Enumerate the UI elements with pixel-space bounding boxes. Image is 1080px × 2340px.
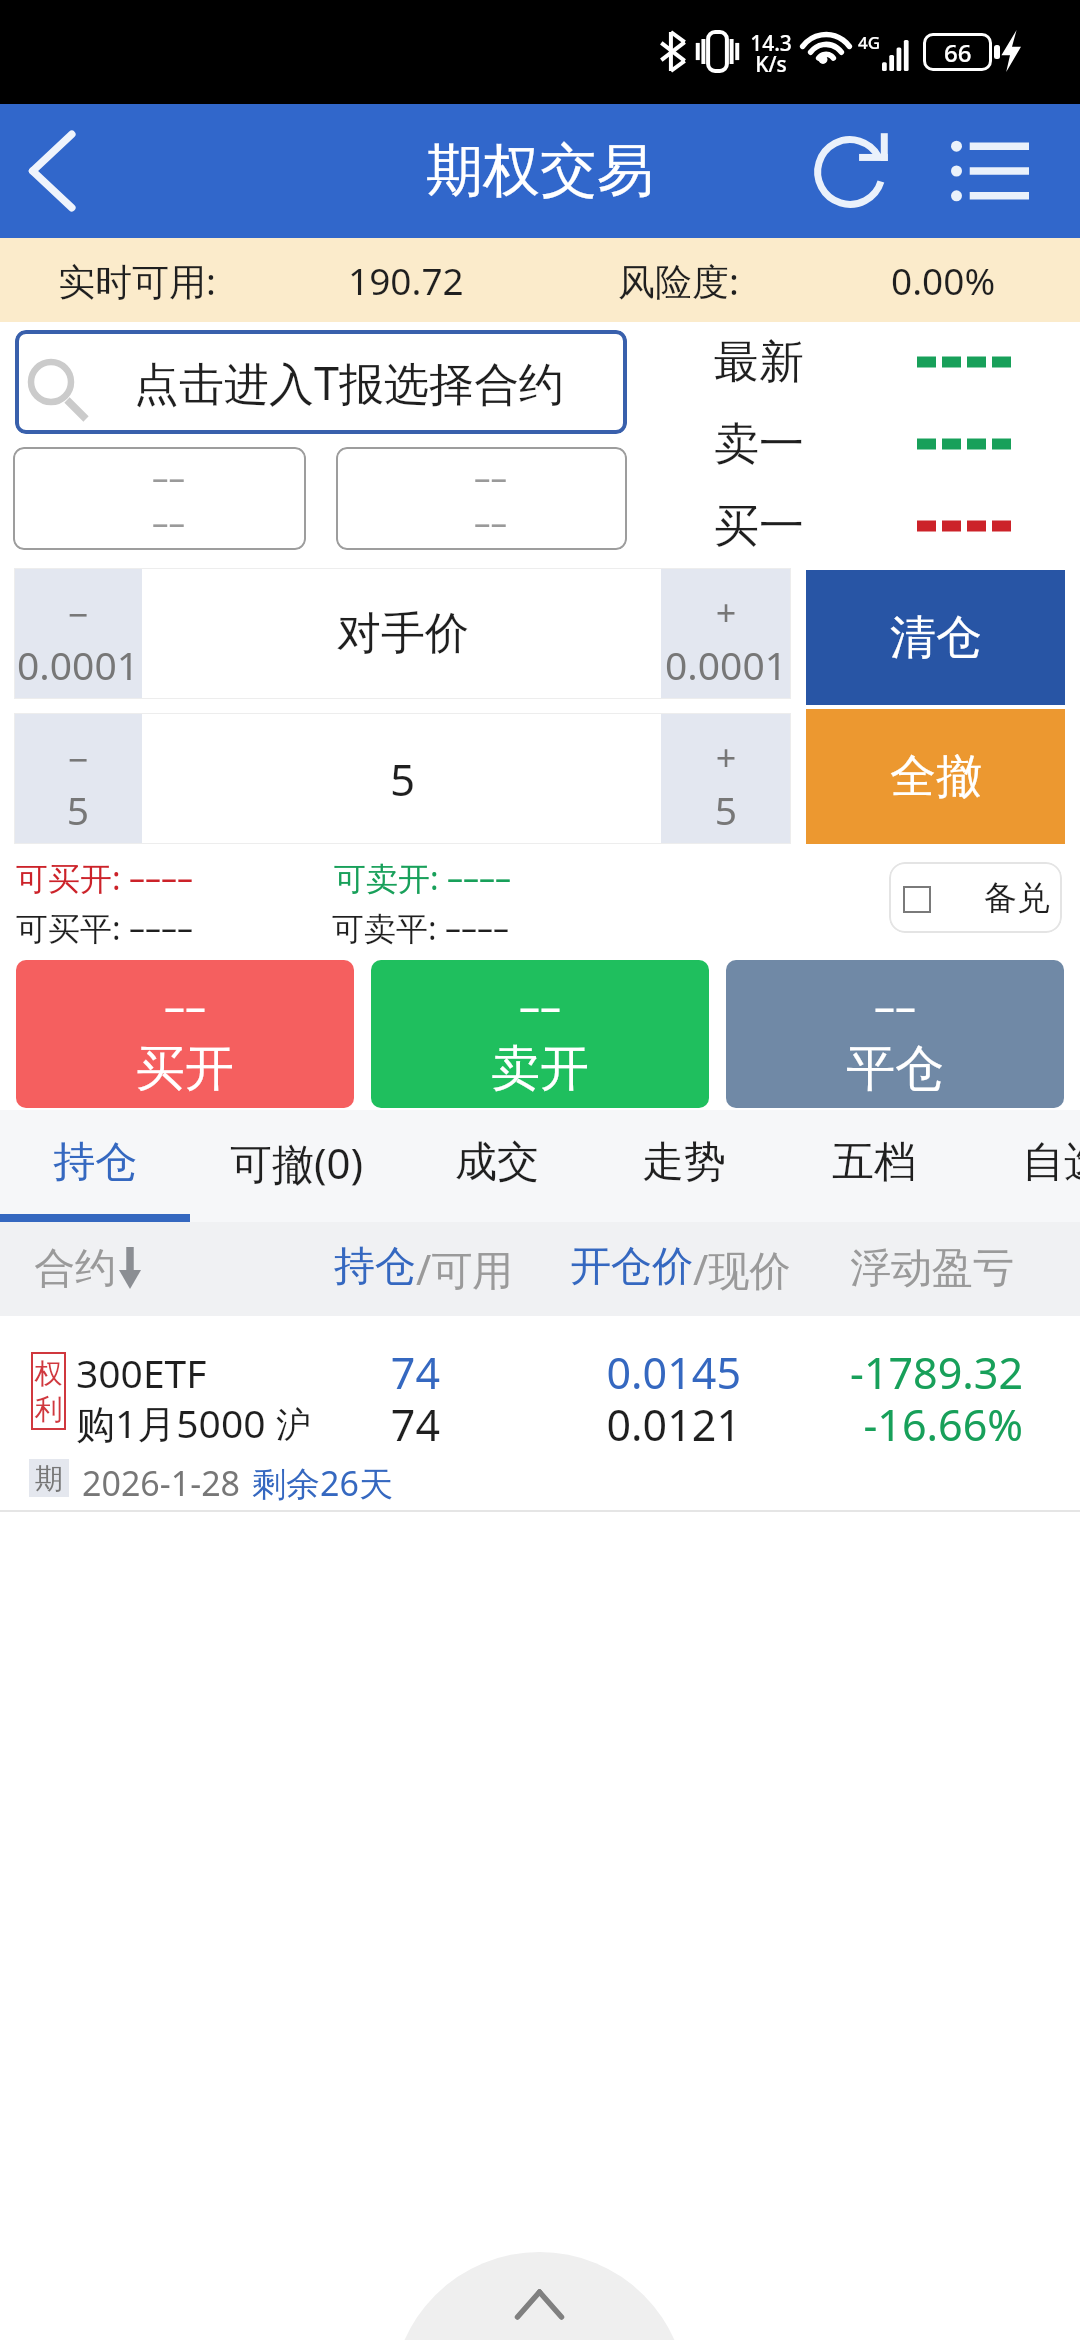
button[interactable]: Expand <box>392 2252 687 2340</box>
staticText: 0.0121 <box>520 1395 741 1454</box>
staticText: –– <box>726 977 1064 1034</box>
staticText: 备兑 <box>984 877 1050 919</box>
staticText: 卖开 <box>371 1038 709 1100</box>
staticText: 期权交易 <box>426 135 654 207</box>
button[interactable]: –– <box>16 960 354 1108</box>
staticText: 190.72 <box>348 255 464 305</box>
staticText: + <box>661 733 791 782</box>
staticText: 走势 <box>642 1136 726 1189</box>
staticText: 可卖平: –––– <box>332 906 509 950</box>
staticText: 0.00% <box>891 255 996 305</box>
staticText: 74 <box>260 1395 440 1454</box>
staticText: 可卖开: –––– <box>334 856 511 900</box>
staticText: 对手价 <box>337 606 469 661</box>
button[interactable]: –– <box>13 447 306 550</box>
staticText: 沪 <box>276 1403 311 1447</box>
button[interactable]: 持仓 <box>0 1110 190 1222</box>
staticText: 0.0001 <box>661 638 791 691</box>
button[interactable]: Menu <box>920 104 1060 238</box>
staticText: 5 <box>661 783 791 836</box>
staticText: 权 <box>31 1356 66 1391</box>
staticText: 利 <box>31 1392 66 1427</box>
staticText: /可用 <box>416 1241 514 1297</box>
button[interactable]: –– <box>336 447 627 550</box>
staticText: 浮动盈亏 <box>850 1243 1014 1295</box>
button[interactable]: –– <box>726 960 1064 1108</box>
staticText: 点击进入T报选择合约 <box>134 352 565 413</box>
button[interactable]: 可撤(0) <box>189 1110 404 1222</box>
staticText: 全撤 <box>890 748 982 806</box>
button[interactable]: 备兑 <box>889 862 1062 933</box>
staticText: 风险度: <box>618 255 739 306</box>
staticText: 剩余26天 <box>252 1460 393 1506</box>
button[interactable]: 权 <box>0 1316 1080 1512</box>
button[interactable]: –– <box>371 960 709 1108</box>
button[interactable]: 5 <box>390 749 416 809</box>
staticText: − <box>14 735 142 784</box>
staticText: –– <box>345 500 627 545</box>
staticText: + <box>661 588 791 637</box>
staticText: 开仓价 <box>570 1241 693 1293</box>
button[interactable]: Refresh <box>790 104 914 238</box>
button[interactable]: Back <box>0 104 116 238</box>
staticText: 66 <box>944 36 972 69</box>
staticText: /现价 <box>693 1241 791 1297</box>
staticText: 300ETF <box>76 1346 207 1399</box>
button[interactable]: Increase <box>661 713 791 844</box>
staticText: 可买开: –––– <box>16 856 193 900</box>
staticText: 清仓 <box>890 609 982 667</box>
button[interactable]: 五档 <box>779 1110 969 1222</box>
staticText: 4G <box>858 31 881 54</box>
staticText: 买一 <box>714 498 804 555</box>
staticText: 5 <box>390 749 416 809</box>
staticText: 卖一 <box>714 416 804 473</box>
button[interactable]: 成交 <box>404 1110 589 1222</box>
staticText: 持仓 <box>53 1136 137 1189</box>
staticText: 期 <box>35 1461 63 1496</box>
staticText: 可买平: –––– <box>16 906 193 950</box>
staticText: 0.0145 <box>520 1343 741 1402</box>
button[interactable]: 点击进入T报选择合约 <box>15 330 627 434</box>
staticText: –– <box>22 455 306 500</box>
staticText: 持仓 <box>334 1241 416 1293</box>
staticText: –– <box>345 455 627 500</box>
staticText: –– <box>371 977 709 1034</box>
button[interactable]: Decrease <box>14 713 142 844</box>
staticText: –– <box>22 500 306 545</box>
button[interactable]: Increase <box>661 568 791 699</box>
button[interactable]: 全撤 <box>806 709 1065 844</box>
staticText: 74 <box>260 1343 440 1402</box>
staticText: 合约 <box>34 1243 116 1295</box>
button[interactable]: 对手价 <box>337 606 469 661</box>
staticText: -16.66% <box>790 1395 1023 1454</box>
staticText: 五档 <box>832 1136 916 1189</box>
button[interactable]: Decrease <box>14 568 142 699</box>
button[interactable]: 自选 <box>969 1110 1080 1222</box>
staticText: 0.0001 <box>14 638 142 691</box>
staticText: 平仓 <box>726 1038 1064 1100</box>
staticText: − <box>14 590 142 639</box>
staticText: -1789.32 <box>790 1343 1023 1402</box>
staticText: 实时可用: <box>58 255 216 306</box>
staticText: 14.3 <box>748 29 794 58</box>
button[interactable]: 走势 <box>589 1110 779 1222</box>
staticText: –– <box>16 977 354 1034</box>
staticText: 5 <box>14 783 142 836</box>
staticText: 买开 <box>16 1038 354 1100</box>
staticText: 购1月5000 <box>76 1396 266 1449</box>
staticText: K/s <box>748 50 794 79</box>
staticText: 可撤(0) <box>230 1134 364 1191</box>
staticText: 最新 <box>714 334 804 391</box>
button[interactable]: 清仓 <box>806 570 1065 705</box>
staticText: 自选 <box>1022 1136 1080 1189</box>
staticText: 成交 <box>455 1136 539 1189</box>
staticText: 2026-1-28 <box>82 1460 241 1506</box>
